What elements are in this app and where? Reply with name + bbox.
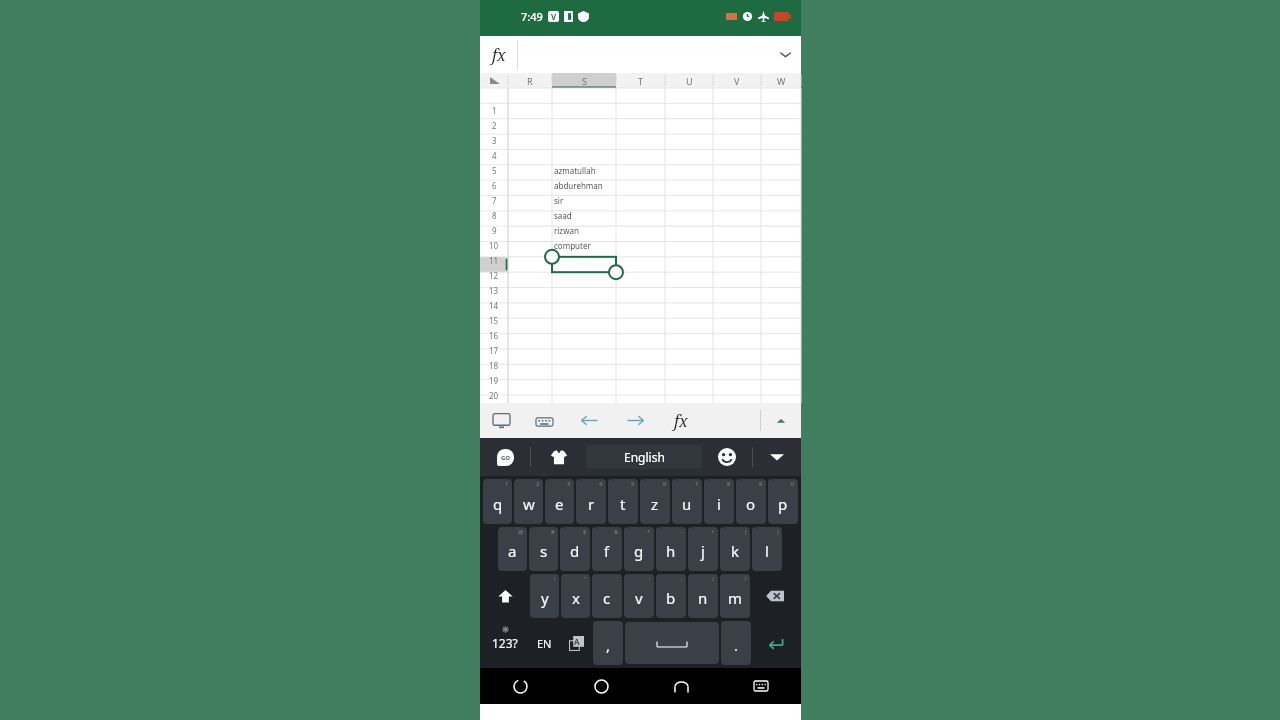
- button[interactable]: R: [508, 73, 552, 88]
- staticText: ;: [681, 575, 683, 583]
- button[interactable]: Numeric keyboard: [523, 403, 566, 438]
- button[interactable]: Back: [480, 668, 561, 704]
- staticText: 16: [489, 330, 499, 341]
- staticText: U: [686, 75, 693, 87]
- staticText: rizwan: [554, 225, 579, 236]
- staticText: 6: [492, 180, 497, 191]
- button[interactable]: 8: [704, 479, 734, 524]
- button[interactable]: 1: [483, 479, 512, 524]
- button[interactable]: GO keyboard: [480, 438, 530, 476]
- button[interactable]: W: [761, 73, 801, 88]
- staticText: sir: [554, 195, 564, 206]
- button[interactable]: Previous: [566, 403, 612, 438]
- staticText: 13: [489, 285, 499, 296]
- button[interactable]: Expand formula bar: [769, 36, 801, 73]
- button[interactable]: ,: [593, 621, 623, 665]
- button[interactable]: 3: [545, 479, 574, 524]
- staticText: l: [765, 541, 769, 561]
- button[interactable]: 9: [736, 479, 766, 524]
- button[interactable]: ?: [720, 574, 750, 618]
- staticText: V: [734, 75, 740, 87]
- button[interactable]: V: [713, 73, 761, 88]
- button[interactable]: English: [586, 445, 702, 469]
- button[interactable]: EN: [529, 622, 559, 664]
- button[interactable]: U: [665, 73, 713, 88]
- button[interactable]: Full screen: [480, 403, 523, 438]
- staticText: S: [582, 75, 587, 87]
- button[interactable]: 5: [608, 479, 638, 524]
- button[interactable]: !: [530, 574, 559, 618]
- staticText: 20: [489, 390, 499, 401]
- staticText: d: [570, 541, 580, 561]
- button[interactable]: 0: [768, 479, 798, 524]
- button[interactable]: #: [529, 527, 558, 571]
- staticText: h: [666, 541, 676, 561]
- staticText: $: [583, 528, 587, 536]
- staticText: @: [518, 528, 524, 536]
- button[interactable]: Next: [612, 403, 658, 438]
- button[interactable]: 4: [576, 479, 606, 524]
- button[interactable]: ": [561, 574, 590, 618]
- staticText: ?: [744, 575, 747, 583]
- button[interactable]: :: [624, 574, 654, 618]
- button[interactable]: .: [721, 621, 751, 665]
- staticText: .: [734, 635, 739, 655]
- button[interactable]: $: [560, 527, 590, 571]
- button[interactable]: Themes: [531, 438, 586, 476]
- button[interactable]: [480, 73, 508, 88]
- staticText: i: [717, 494, 721, 514]
- button[interactable]: Function: [480, 36, 517, 73]
- staticText: +: [711, 528, 715, 536]
- staticText: (: [745, 528, 747, 536]
- staticText: R: [527, 75, 533, 87]
- staticText: a: [508, 541, 517, 561]
- staticText: ": [584, 575, 587, 583]
- button[interactable]: Home: [561, 668, 641, 704]
- staticText: 1: [492, 105, 497, 116]
- button[interactable]: Shift: [483, 574, 528, 618]
- staticText: computer: [554, 240, 591, 251]
- staticText: 7: [492, 195, 497, 206]
- staticText: fx: [492, 44, 506, 66]
- staticText: 2: [492, 120, 497, 131]
- button[interactable]: +: [688, 527, 718, 571]
- button[interactable]: Emoji: [702, 438, 752, 476]
- button[interactable]: Select input: [561, 622, 591, 664]
- button[interactable]: 2: [514, 479, 543, 524]
- staticText: 12: [489, 270, 499, 281]
- button[interactable]: ': [592, 574, 622, 618]
- button[interactable]: ): [752, 527, 782, 571]
- button[interactable]: 123?: [483, 622, 527, 664]
- button[interactable]: /: [688, 574, 718, 618]
- staticText: o: [746, 494, 756, 514]
- button[interactable]: @: [498, 527, 527, 571]
- staticText: !: [554, 575, 556, 583]
- button[interactable]: 6: [640, 479, 670, 524]
- button[interactable]: Recents: [641, 668, 721, 704]
- button[interactable]: Space: [625, 622, 719, 664]
- button[interactable]: (: [720, 527, 750, 571]
- staticText: t: [620, 494, 626, 514]
- button[interactable]: Backspace: [752, 574, 798, 618]
- button[interactable]: Hide keyboard: [753, 438, 801, 476]
- button[interactable]: Insert function: [658, 403, 704, 438]
- staticText: 14: [489, 300, 499, 311]
- staticText: 18: [489, 360, 499, 371]
- button[interactable]: Keyboard switcher: [721, 668, 801, 704]
- button[interactable]: T: [616, 73, 665, 88]
- button[interactable]: -: [656, 527, 686, 571]
- button[interactable]: ;: [656, 574, 686, 618]
- staticText: T: [638, 75, 644, 87]
- staticText: e: [555, 494, 564, 514]
- button[interactable]: Enter: [753, 622, 798, 664]
- button[interactable]: 7: [672, 479, 702, 524]
- button[interactable]: *: [624, 527, 654, 571]
- staticText: 5: [492, 165, 497, 176]
- button[interactable]: Collapse: [761, 403, 801, 438]
- button[interactable]: S: [552, 73, 616, 88]
- button[interactable]: &: [592, 527, 622, 571]
- staticText: 7: [695, 480, 699, 488]
- staticText: 11: [489, 255, 499, 266]
- staticText: y: [541, 588, 549, 608]
- staticText: m: [728, 588, 743, 608]
